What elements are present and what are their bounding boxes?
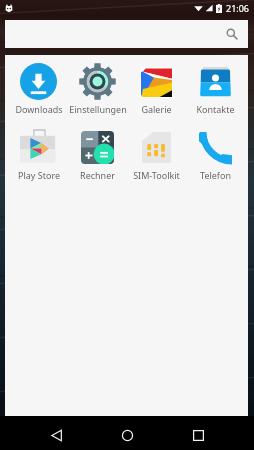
button[interactable]: Galerie [127, 63, 186, 115]
staticText: SIM-Toolkit [133, 169, 180, 181]
staticText: Play Store [18, 169, 60, 181]
button[interactable]: Play Store [9, 129, 68, 181]
button[interactable]: Rechner [68, 129, 127, 181]
staticText: Downloads [15, 103, 63, 115]
staticText: Telefon [200, 169, 231, 181]
button[interactable]: Einstellungen [68, 63, 127, 115]
other: Search [226, 28, 238, 40]
button[interactable]: Back [38, 416, 74, 450]
staticText: Galerie [141, 103, 172, 115]
button[interactable]: SIM-Toolkit [127, 129, 186, 181]
button[interactable]: Downloads [9, 63, 68, 115]
staticText: Einstellungen [69, 103, 127, 115]
button[interactable]: Telefon [186, 129, 245, 181]
staticText: Rechner [80, 169, 115, 181]
button[interactable]: Kontakte [186, 63, 245, 115]
button[interactable]: Search [5, 20, 248, 48]
staticText: Kontakte [196, 103, 235, 115]
button[interactable]: Recent apps [180, 416, 216, 450]
button[interactable]: Home [109, 416, 145, 450]
staticText: 21:06 [226, 2, 250, 14]
